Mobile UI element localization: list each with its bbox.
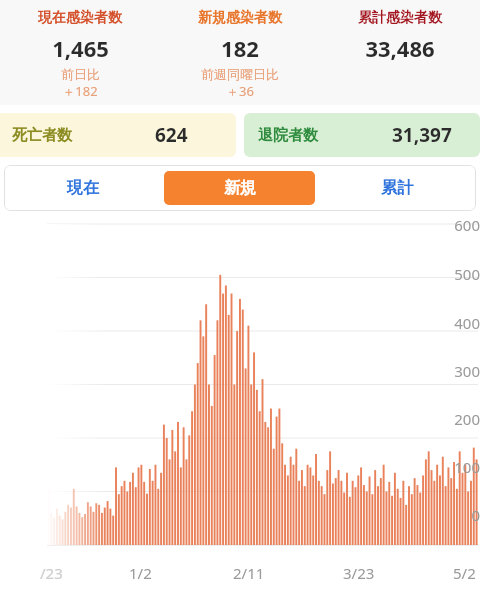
staticText: ＋182 [62,82,98,100]
staticText: 624 [155,122,188,148]
staticText: 33,486 [365,33,435,63]
staticText: 1/2 [129,563,152,583]
staticText: 182 [221,33,259,63]
button[interactable]: 累計 [321,171,472,205]
button[interactable]: 新規 [164,171,315,205]
staticText: /23 [40,563,63,583]
button[interactable]: 退院者数 [244,113,480,157]
staticText: 0 [439,505,480,525]
staticText: 600 [439,215,480,235]
staticText: ＋36 [226,82,254,100]
staticText: 退院者数 [258,126,318,145]
staticText: 累計感染者数 [358,9,442,27]
staticText: 新規感染者数 [198,9,282,27]
staticText: 500 [439,264,480,284]
button[interactable]: 現在 [8,171,158,205]
staticText: 300 [439,361,480,381]
staticText: 現在感染者数 [38,9,122,27]
button[interactable]: 現在感染者数 [0,0,160,105]
staticText: 1,465 [52,33,109,63]
staticText: 新規 [224,178,256,198]
staticText: 累計 [381,178,413,198]
staticText: 現在 [67,178,99,198]
button[interactable]: 新規感染者数 [160,0,320,105]
staticText: 3/23 [343,563,375,583]
button[interactable]: 死亡者数 [0,113,236,157]
staticText: 5/2 [453,563,476,583]
staticText: 前日比 [61,66,100,82]
staticText: 2/11 [233,563,265,583]
staticText: 31,397 [392,122,452,148]
staticText: 前週同曜日比 [201,66,279,82]
staticText: 死亡者数 [12,126,72,145]
staticText: 100 [439,457,480,477]
button[interactable]: 累計感染者数 [320,0,480,105]
staticText: 200 [439,409,480,429]
staticText: 400 [439,313,480,333]
